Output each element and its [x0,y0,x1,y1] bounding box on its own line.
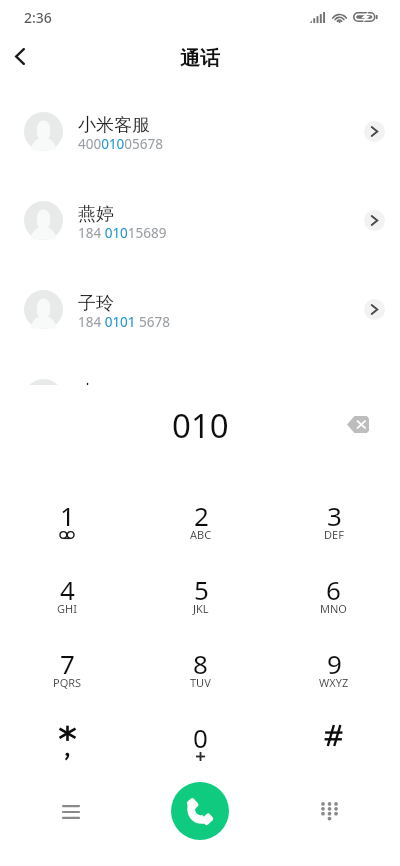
staticText: 184 01015689 [78,224,167,242]
staticText: 7 [60,646,75,681]
staticText: 8 [193,646,208,681]
staticText: 3 [327,498,342,533]
button[interactable]: 小米客服 [0,87,400,176]
button[interactable]: Dialpad [307,790,351,834]
staticText: 5 [194,572,209,607]
staticText: 010 [172,403,229,448]
button[interactable]: 燕婷 [0,176,400,265]
button[interactable]: 7 [0,646,134,720]
staticText: WXYZ [319,675,349,690]
button[interactable]: Backspace [338,404,378,444]
button[interactable]: Details [364,299,385,320]
button[interactable]: Call [171,782,229,840]
button[interactable]: Back [0,34,42,78]
button[interactable]: 小 [0,354,400,385]
button[interactable]: 3 [267,498,400,572]
button[interactable]: 8 [134,646,267,720]
staticText: 9 [327,646,342,681]
button[interactable]: 子玲 [0,265,400,354]
staticText: DEF [324,527,344,542]
staticText: JKL [193,601,209,616]
button[interactable]: Menu [49,790,93,834]
button[interactable]: 1 [0,498,134,572]
staticText: TUV [190,675,211,690]
button[interactable]: Details [364,121,385,142]
staticText: 通话 [180,46,220,71]
button[interactable] [267,720,400,794]
staticText: 6 [326,572,341,607]
button[interactable]: 9 [267,646,400,720]
staticText: MNO [320,601,347,616]
staticText: 184 0101 5678 [78,313,170,331]
button[interactable]: Details [364,210,385,231]
button[interactable]: 2 [134,498,267,572]
button[interactable]: 6 [267,572,400,646]
staticText: 小米客服 [78,114,150,137]
staticText: 2:36 [24,8,52,27]
staticText: 40001005678 [78,135,163,153]
staticText: 4 [60,572,75,607]
staticText: PQRS [53,675,82,690]
staticText: 1 [60,498,75,533]
staticText: 燕婷 [78,203,114,226]
staticText: ABC [190,527,212,542]
staticText: 2 [194,498,209,533]
staticText: 子玲 [78,292,114,315]
staticText: 0 [193,720,208,755]
button[interactable]: 5 [134,572,267,646]
button[interactable] [0,720,134,794]
staticText: GHI [57,601,77,616]
button[interactable]: 0 [134,720,267,794]
button[interactable]: 4 [0,572,134,646]
staticText: 小 [78,381,96,385]
